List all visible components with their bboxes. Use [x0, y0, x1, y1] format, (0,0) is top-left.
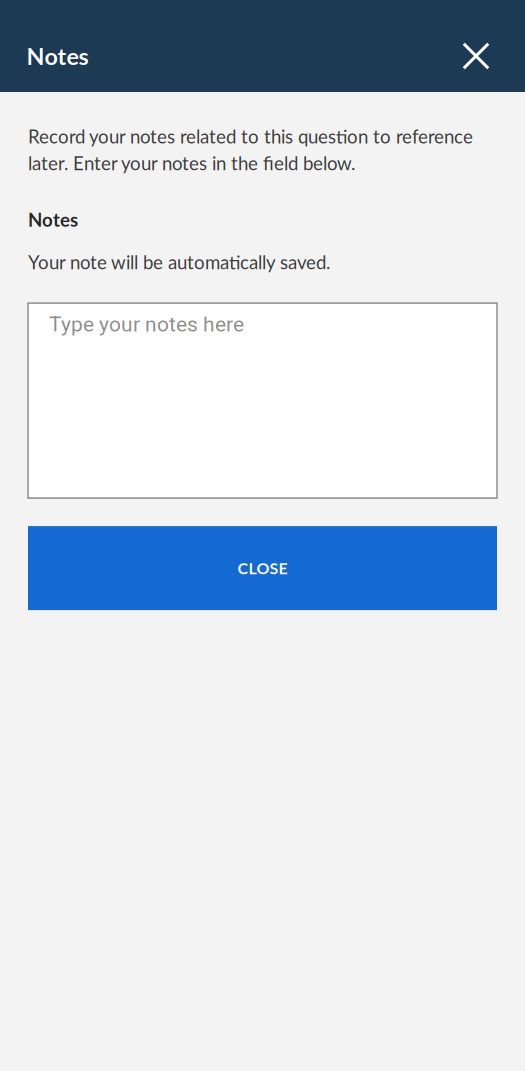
button[interactable]: Close: [454, 34, 498, 78]
staticText: Type your notes here: [49, 312, 244, 337]
staticText: Your note will be automatically saved.: [28, 251, 330, 273]
staticText: Notes: [28, 208, 78, 231]
staticText: CLOSE: [237, 558, 287, 578]
staticText: Record your notes related to this questi…: [28, 125, 473, 174]
button[interactable]: CLOSE: [28, 526, 497, 610]
staticText: Notes: [26, 42, 88, 70]
